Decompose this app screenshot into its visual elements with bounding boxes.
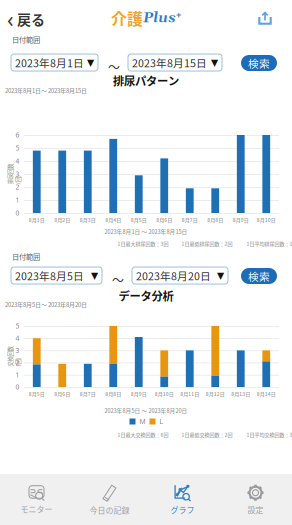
staticText: 8月1日 [29,216,45,223]
staticText: 4 [15,334,19,343]
staticText: 1 [15,196,19,204]
staticText: 8月12日 [206,390,225,397]
staticText: 2 [15,358,19,367]
staticText: 8月5日 [29,390,45,397]
button[interactable]: 2023年8月5日 [11,267,102,284]
button[interactable]: モニター [0,474,73,525]
staticText: 今日の記録 [89,504,129,516]
staticText: 8月11日 [180,390,199,397]
staticText: 8月7日 [182,216,198,223]
staticText: 3 [15,346,19,355]
staticText: 2023年8月1日～ 2023年8月15日 [5,86,87,95]
staticText: 1日平均排尿回数：1.5回 [246,240,292,247]
staticText: 〜 [108,58,120,75]
button[interactable]: 共有 [258,11,272,25]
staticText: ▼ [87,57,94,68]
staticText: 8月9日 [233,216,249,223]
staticText: 8月4日 [105,216,121,223]
staticText: M [139,417,145,426]
staticText: 8月14日 [257,390,276,397]
staticText: 1日最低交換回数：2回 [181,431,232,438]
staticText: 1 [15,370,19,379]
staticText: 8月9日 [131,390,147,397]
button[interactable]: 設定 [219,474,292,525]
staticText: 8月13日 [231,390,250,397]
staticText: ‹ [7,5,14,33]
staticText: 8月7日 [80,390,96,397]
staticText: 2 [15,183,19,191]
button[interactable]: 2023年8月20日 [132,267,228,284]
staticText: モニター [20,503,52,515]
staticText: 5 [15,144,19,152]
staticText: 日付範囲 [12,251,40,262]
button[interactable]: 2023年8月1日 [11,54,98,71]
staticText: 検索 [248,268,270,284]
staticText: 8月10日 [257,216,276,223]
button[interactable]: グラフ [146,474,219,525]
staticText: 2023年8月5日～ 2023年8月20日 [5,300,87,309]
staticText: 5 [15,322,19,330]
staticText: グラフ [170,504,194,515]
button[interactable]: 2023年8月15日 [128,54,222,71]
staticText: 8月6日 [156,216,172,223]
staticText: 0 [15,209,19,217]
staticText: 4 [15,157,19,165]
staticText: 8月5日 [131,216,147,223]
staticText: 6 [15,131,19,139]
staticText: 8月6日 [54,390,70,397]
button[interactable]: 検索 [241,268,277,284]
staticText: 1日最大排尿回数：3回 [117,240,168,247]
staticText: 〜 [112,271,124,288]
staticText: 2023年8月5日 [15,268,84,283]
staticText: 1日最低排尿回数：2回 [181,240,232,247]
staticText: 2023年8月5日 ～ 2023年8月20日 [104,406,187,414]
staticText: Plus [143,9,176,27]
staticText: 8月3日 [80,216,96,223]
staticText: 検索 [248,55,270,71]
staticText: 設定 [247,504,263,515]
staticText: 3 [15,170,19,178]
button[interactable]: 検索 [241,55,277,71]
staticText: 交換回数 (回) [4,349,24,364]
staticText: ▼ [91,270,98,281]
staticText: 8月2日 [54,216,70,223]
staticText: 排尿パターン [113,72,179,89]
button[interactable]: ‹ [7,9,57,29]
staticText: L [159,417,162,426]
staticText: 戻る [17,9,45,29]
staticText: 2023年8月15日 [132,55,207,70]
staticText: 1日平均交換回数：3.0回 [246,431,292,438]
staticText: 8月8日 [105,390,121,397]
staticText: 日付範囲 [12,34,40,45]
staticText: 8月8日 [207,216,223,223]
staticText: 1日最大交換回数：6回 [117,431,168,438]
staticText: + [176,9,181,21]
staticText: 2023年8月20日 [136,268,211,283]
staticText: 介護 [111,6,143,30]
button[interactable]: 今日の記録 [73,474,146,525]
staticText: 排尿回数 (回) [4,166,24,182]
staticText: 0 [15,383,19,391]
staticText: 2023年8月1日 ～ 2023年8月15日 [104,227,187,235]
staticText: 8月10日 [155,390,174,397]
staticText: 2023年8月1日 [15,55,84,70]
staticText: ▼ [217,270,224,281]
staticText: データ分析 [118,287,173,304]
staticText: ▼ [211,57,218,68]
